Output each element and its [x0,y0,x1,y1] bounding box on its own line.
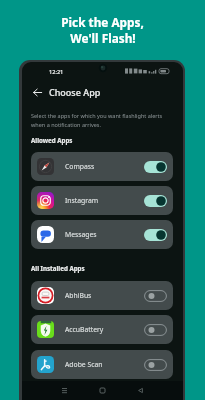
button[interactable]: Adobe Scan [31,350,173,379]
staticText: Allowed Apps [31,136,73,144]
staticText: Messages [65,230,97,239]
staticText: 12:21 [49,68,64,76]
button[interactable]: Messages [31,220,173,249]
button[interactable]: Back [29,84,45,100]
staticText: All Installed Apps [31,264,85,272]
button[interactable]: AbhiBus [31,281,173,310]
staticText: Compass [65,162,95,171]
staticText: Instagram [65,196,99,205]
button[interactable]: Back [133,383,147,397]
button[interactable]: AccuBattery [31,315,173,344]
staticText: Choose App [49,86,101,98]
staticText: Select the apps for which you want flash… [31,112,163,119]
button[interactable]: Recent apps [57,383,71,397]
staticText: AbhiBus [65,291,92,300]
button[interactable]: Compass [31,152,173,181]
staticText: Pick the Apps, [61,14,144,30]
staticText: We'll Flash! [70,30,136,46]
button[interactable]: Instagram [31,186,173,215]
button[interactable]: Home [95,383,109,397]
staticText: Adobe Scan [65,360,103,369]
staticText: when a notification arrives. [31,121,101,128]
staticText: AccuBattery [65,325,104,334]
